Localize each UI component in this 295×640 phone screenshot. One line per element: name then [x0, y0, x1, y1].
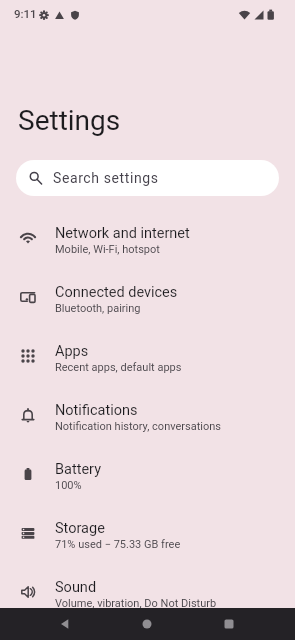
- staticText: Apps: [55, 343, 89, 360]
- button[interactable]: Sound: [0, 565, 295, 624]
- staticText: Notification history, conversations: [55, 420, 221, 433]
- staticText: Storage: [55, 520, 105, 537]
- staticText: Volume, vibration, Do Not Disturb: [55, 597, 217, 610]
- staticText: 100%: [55, 479, 82, 492]
- staticText: Notifications: [55, 402, 138, 419]
- staticText: Search settings: [53, 170, 159, 186]
- button[interactable]: [123, 608, 171, 640]
- staticText: Battery: [55, 461, 101, 478]
- staticText: Mobile, Wi-Fi, hotspot: [55, 243, 160, 256]
- button[interactable]: [205, 608, 253, 640]
- button[interactable]: Search settings: [16, 160, 279, 196]
- staticText: 9:11: [14, 7, 37, 20]
- button[interactable]: Notifications: [0, 388, 295, 447]
- button[interactable]: Apps: [0, 329, 295, 388]
- staticText: Recent apps, default apps: [55, 361, 182, 374]
- staticText: Sound: [55, 579, 97, 596]
- button[interactable]: Connected devices: [0, 270, 295, 329]
- staticText: Connected devices: [55, 284, 178, 301]
- staticText: Settings: [18, 104, 121, 137]
- button[interactable]: Battery: [0, 447, 295, 506]
- button[interactable]: Storage: [0, 506, 295, 565]
- button[interactable]: Network and internet: [0, 211, 295, 270]
- staticText: Network and internet: [55, 225, 190, 242]
- staticText: 71% used − 75.33 GB free: [55, 538, 181, 551]
- staticText: Bluetooth, pairing: [55, 302, 141, 315]
- button[interactable]: [41, 608, 89, 640]
